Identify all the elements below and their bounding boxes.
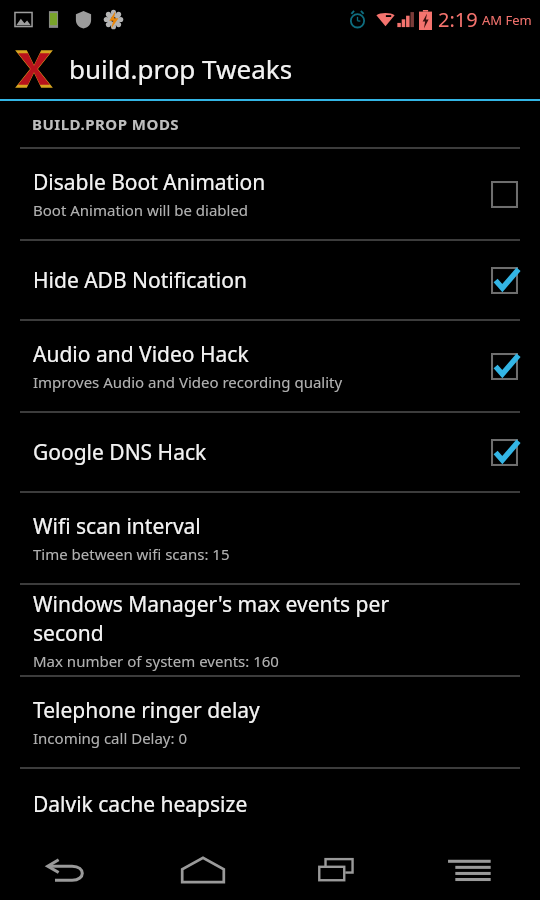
button[interactable]: Google DNS Hack: [0, 413, 540, 491]
staticText: Boot Animation will be diabled: [33, 200, 249, 220]
button[interactable]: Disable Boot Animation: [0, 149, 540, 239]
staticText: BUILD.PROP MODS: [32, 114, 180, 134]
staticText: Improves Audio and Video recording quali…: [33, 372, 343, 392]
button[interactable]: Menu: [405, 840, 540, 900]
staticText: Time between wifi scans: 15: [33, 544, 230, 564]
staticText: build.prop Tweaks: [69, 51, 293, 86]
staticText: Google DNS Hack: [33, 438, 207, 467]
staticText: Telephone ringer delay: [33, 696, 260, 725]
staticText: Hide ADB Notification: [33, 266, 247, 295]
staticText: Disable Boot Animation: [33, 168, 266, 197]
staticText: Wifi scan interval: [33, 512, 201, 541]
staticText: Windows Manager's max events per second: [33, 590, 460, 648]
button[interactable]: Home: [135, 840, 270, 900]
staticText: 2:19: [438, 6, 478, 33]
staticText: AM Fem: [482, 11, 532, 29]
button[interactable]: Wifi scan interval: [0, 493, 540, 583]
staticText: Dalvik cache heapsize: [33, 790, 248, 819]
button[interactable]: Audio and Video Hack: [0, 321, 540, 411]
staticText: Max number of system events: 160: [33, 651, 279, 671]
button[interactable]: Dalvik cache heapsize: [0, 769, 540, 840]
button[interactable]: Back: [0, 840, 135, 900]
button[interactable]: Recent apps: [270, 840, 405, 900]
staticText: Incoming call Delay: 0: [33, 728, 188, 748]
staticText: Audio and Video Hack: [33, 340, 249, 369]
button[interactable]: Hide ADB Notification: [0, 241, 540, 319]
button[interactable]: Windows Manager's max events per second: [0, 585, 540, 675]
button[interactable]: Telephone ringer delay: [0, 677, 540, 767]
